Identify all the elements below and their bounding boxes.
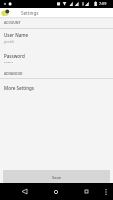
button[interactable]: Save xyxy=(3,170,110,183)
staticText: ACCOUNT xyxy=(4,20,21,25)
button[interactable]: Back xyxy=(18,185,31,198)
button[interactable]: User Name xyxy=(0,29,113,49)
button[interactable]: More Settings xyxy=(0,79,113,98)
staticText: Save xyxy=(52,175,62,181)
button[interactable]: Recent apps xyxy=(80,185,93,198)
staticText: 7:09 xyxy=(99,1,107,6)
button[interactable]: Password xyxy=(0,49,113,69)
staticText: User Name xyxy=(4,32,29,38)
button[interactable]: Navigate up xyxy=(1,9,10,16)
button[interactable]: More options xyxy=(99,185,112,198)
staticText: ••••••• xyxy=(4,60,13,65)
staticText: Settings xyxy=(21,10,39,16)
staticText: Password xyxy=(4,53,25,59)
button[interactable]: Home xyxy=(49,185,62,198)
staticText: More Settings xyxy=(4,85,34,91)
staticText: ADVANCED xyxy=(4,71,23,76)
staticText: jsmith xyxy=(4,39,14,44)
